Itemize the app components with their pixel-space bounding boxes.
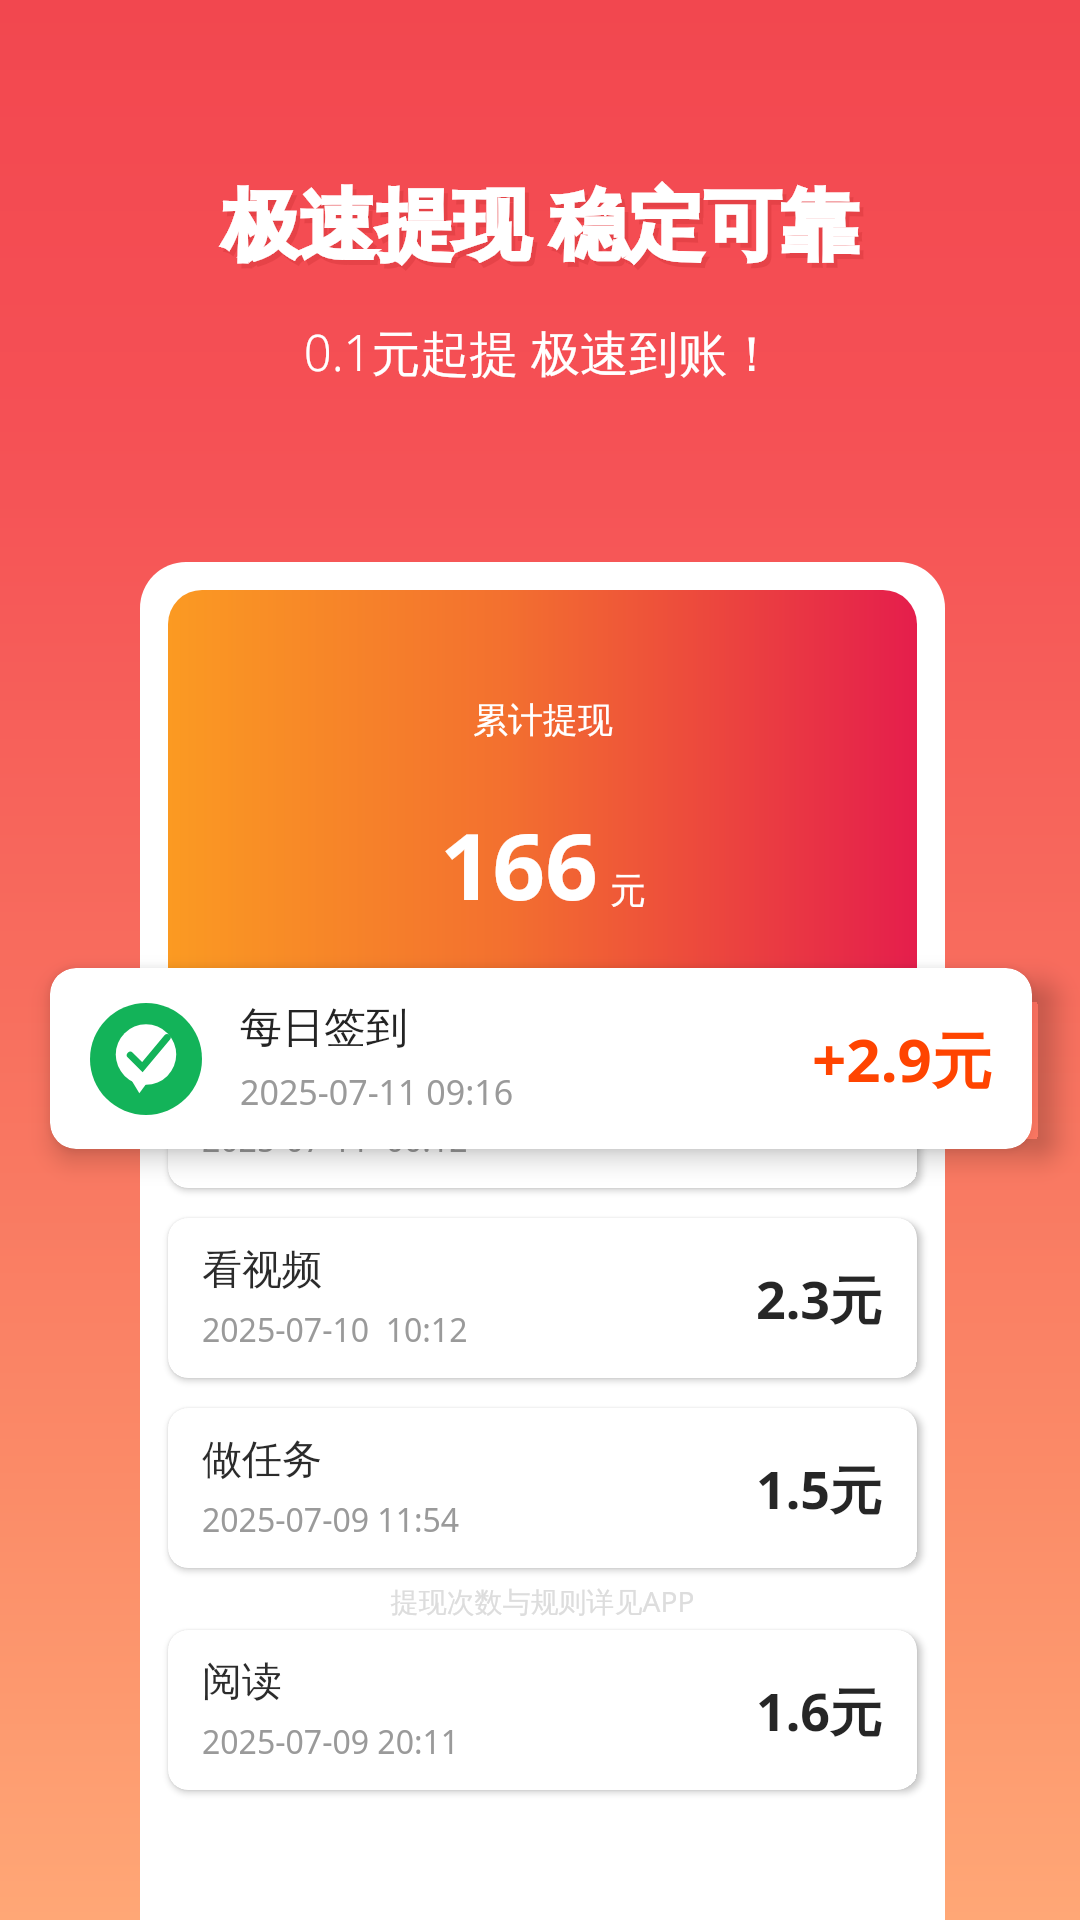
button[interactable]: 每日签到 <box>50 968 1032 1149</box>
staticText: 2025-07-10 10:12 <box>202 1308 468 1352</box>
staticText: 1.5元 <box>756 1453 883 1524</box>
staticText: 极速提现 稳定可靠 <box>0 170 1080 275</box>
staticText: 1.8元 <box>756 1073 883 1144</box>
staticText: 做任务 <box>202 1434 322 1484</box>
staticText: 2025-07-09 20:11 <box>202 1720 460 1764</box>
staticText: 元 <box>610 868 646 913</box>
staticText: 1.6元 <box>756 1675 883 1746</box>
staticText: 166 <box>440 802 598 927</box>
staticText: 看视频 <box>202 1244 322 1294</box>
staticText: 2025-07-11 00:12 <box>202 1118 468 1162</box>
staticText: 累计提现 <box>473 698 613 742</box>
staticText: 极速提现 稳定可靠 <box>4 175 1080 280</box>
button[interactable]: 阅读文章 <box>168 1028 917 1188</box>
button[interactable]: 做任务 <box>168 1408 917 1568</box>
staticText: 每日签到 <box>240 1002 408 1055</box>
button[interactable]: 阅读 <box>168 1630 917 1790</box>
staticText: 提现次数与规则详见APP <box>168 1582 917 1620</box>
staticText: 阅读 <box>202 1656 282 1706</box>
staticText: 2025-07-11 09:16 <box>240 1069 514 1115</box>
button[interactable]: 看视频 <box>168 1218 917 1378</box>
staticText: +2.9元 <box>812 1018 992 1100</box>
other: 每日签到 <box>90 1003 202 1115</box>
staticText: 2025-07-09 11:54 <box>202 1498 460 1542</box>
staticText: 阅读文章 <box>202 1054 362 1104</box>
staticText: 0.1元起提 极速到账！ <box>0 319 1080 386</box>
staticText: 2.3元 <box>756 1263 883 1334</box>
